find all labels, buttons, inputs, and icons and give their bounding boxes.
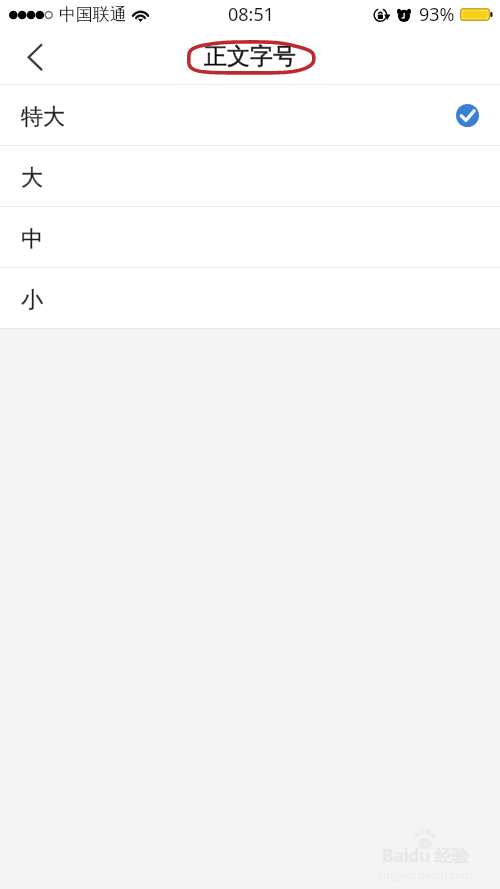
- staticText: 大: [21, 164, 43, 192]
- button[interactable]: 小: [0, 268, 500, 329]
- staticText: 正文字号: [204, 42, 296, 71]
- staticText: 中: [21, 225, 43, 253]
- button[interactable]: 大: [0, 146, 500, 207]
- staticText: 小: [21, 286, 43, 314]
- staticText: Baidu 经验: [382, 844, 469, 867]
- staticText: 中: [21, 225, 43, 253]
- button[interactable]: Back: [6, 34, 52, 80]
- staticText: 特大: [21, 103, 65, 131]
- staticText: 特大: [21, 103, 65, 131]
- staticText: 中国联通: [59, 4, 127, 25]
- staticText: 08:51: [228, 2, 275, 27]
- other: Selected: [456, 104, 479, 127]
- staticText: 正文字号: [204, 42, 296, 71]
- staticText: 93%: [419, 2, 455, 27]
- staticText: 小: [21, 286, 43, 314]
- staticText: 大: [21, 164, 43, 192]
- button[interactable]: 中: [0, 207, 500, 268]
- button[interactable]: 特大: [0, 85, 500, 146]
